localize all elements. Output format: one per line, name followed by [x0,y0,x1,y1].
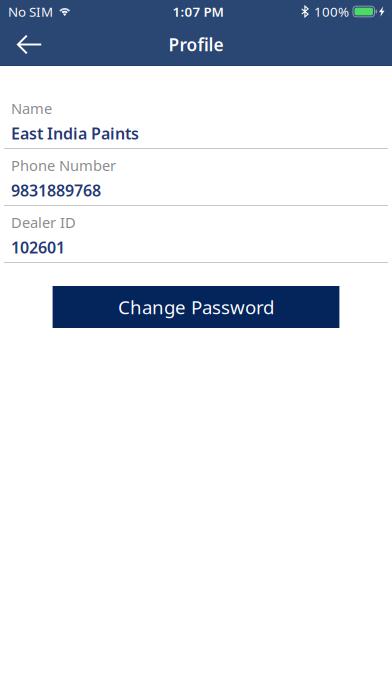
staticText: No SIM [8,3,53,20]
staticText: Dealer ID [11,212,76,232]
staticText: 102601 [11,237,65,258]
button[interactable]: Back [0,26,58,65]
button[interactable]: Change Password [53,286,339,328]
staticText: Profile [168,33,223,56]
staticText: Change Password [118,295,274,319]
staticText: Phone Number [11,155,116,175]
staticText: East India Paints [11,123,139,144]
staticText: 100% [314,3,349,20]
staticText: Name [11,98,52,118]
staticText: 1:07 PM [172,3,223,20]
staticText: 9831889768 [11,180,101,201]
